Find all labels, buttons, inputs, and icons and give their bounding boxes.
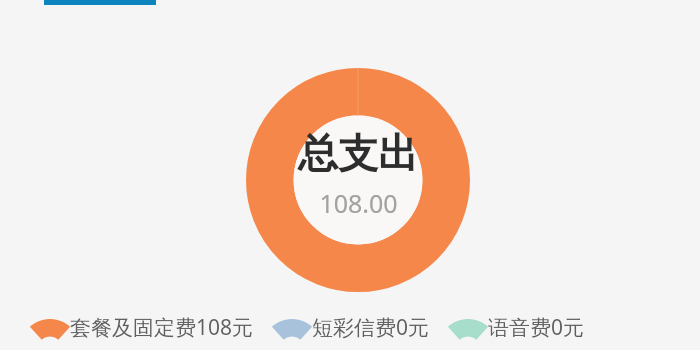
staticText: 短彩信费0元 — [312, 313, 430, 342]
button[interactable]: 语音费0元 — [454, 313, 585, 342]
button[interactable]: 短彩信费0元 — [278, 313, 430, 342]
staticText: 108.00 — [319, 186, 398, 220]
staticText: 语音费0元 — [488, 313, 585, 342]
button[interactable]: 套餐及固定费108元 — [36, 313, 254, 342]
staticText: 总支出 — [298, 128, 418, 178]
button[interactable]: Total expenditure chart — [246, 68, 470, 292]
staticText: 套餐及固定费108元 — [70, 313, 254, 342]
